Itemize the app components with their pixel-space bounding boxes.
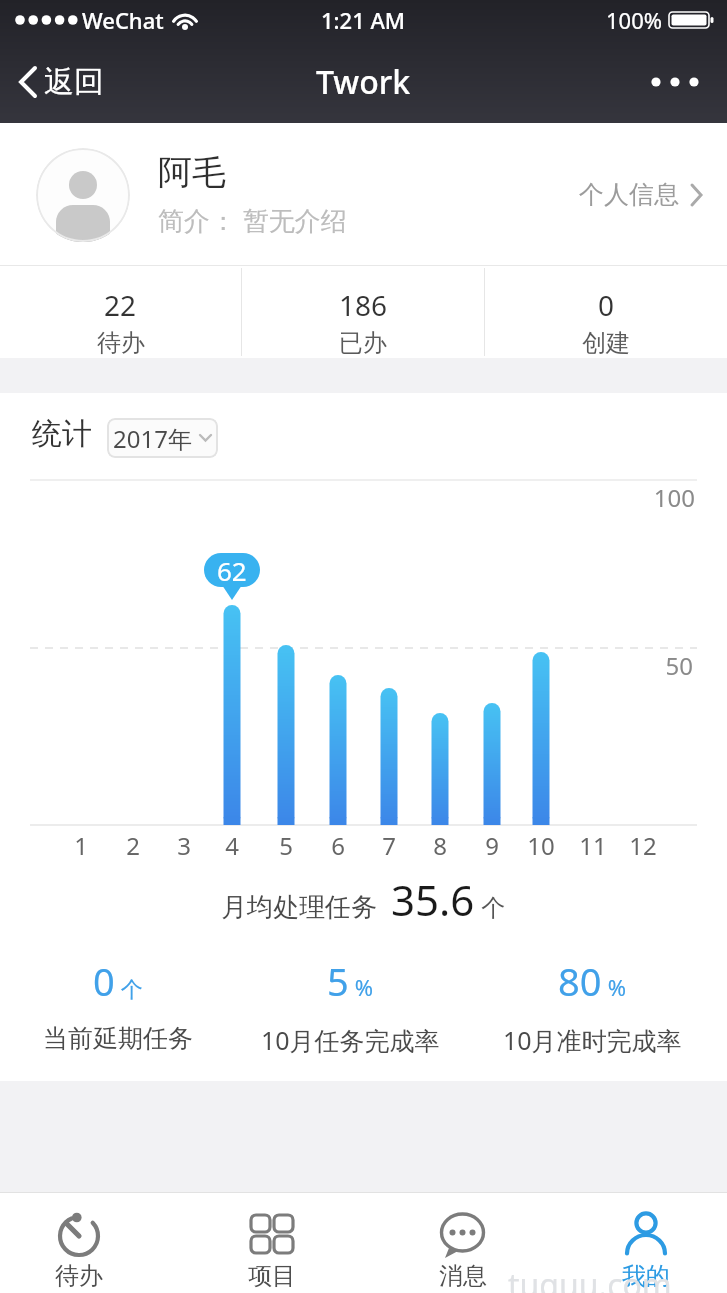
staticText: 简介： 暂无介绍 xyxy=(158,202,347,238)
staticText: 统计 xyxy=(32,415,92,453)
button[interactable]: 待办 xyxy=(0,1193,181,1293)
staticText: 100 xyxy=(565,481,695,514)
staticText: 0 xyxy=(598,286,615,324)
staticText: 阿毛 xyxy=(158,151,226,194)
staticText: 消息 xyxy=(439,1261,487,1291)
button[interactable] xyxy=(651,76,701,88)
staticText: 62 xyxy=(217,553,247,587)
button[interactable]: 2017年 xyxy=(107,418,218,458)
staticText: 3 xyxy=(158,829,210,862)
staticText: Twork xyxy=(316,60,411,104)
staticText: 创建 xyxy=(582,328,630,358)
staticText: 10月任务完成率 xyxy=(261,1023,440,1057)
staticText: 10月准时完成率 xyxy=(503,1023,682,1057)
staticText: 12 xyxy=(617,829,669,862)
staticText: 35.6 xyxy=(391,871,475,928)
staticText: 100% xyxy=(606,5,663,35)
staticText: 1:21 AM xyxy=(321,5,406,35)
button[interactable]: 我的 xyxy=(545,1193,727,1293)
staticText: 80 xyxy=(558,955,602,1007)
staticText: 当前延期任务 xyxy=(43,1023,193,1054)
staticText: WeChat xyxy=(82,5,164,35)
staticText: 项目 xyxy=(248,1261,296,1291)
staticText: 6 xyxy=(312,829,364,862)
staticText: 10 xyxy=(515,829,567,862)
staticText: 9 xyxy=(466,829,518,862)
staticText: 2 xyxy=(107,829,159,862)
staticText: 22 xyxy=(104,286,137,324)
staticText: 7 xyxy=(363,829,415,862)
button[interactable]: 消息 xyxy=(363,1193,545,1293)
staticText: 已办 xyxy=(339,328,387,358)
staticText: 我的 xyxy=(622,1261,670,1291)
button[interactable]: 22 xyxy=(0,266,241,358)
staticText: 返回 xyxy=(44,63,104,101)
staticText: 个人信息 xyxy=(579,179,679,210)
staticText: 50 xyxy=(563,649,693,682)
staticText: 个 xyxy=(115,973,143,1003)
staticText: 个 xyxy=(475,890,506,923)
staticText: 1 xyxy=(55,829,107,862)
staticText: 2017年 xyxy=(113,422,192,455)
button[interactable]: 阿毛 xyxy=(0,123,727,266)
staticText: 4 xyxy=(206,829,258,862)
staticText: 5 xyxy=(260,829,312,862)
staticText: 月均处理任务 xyxy=(221,888,391,924)
staticText: 待办 xyxy=(97,328,145,358)
staticText: 5 xyxy=(327,955,349,1007)
staticText: % xyxy=(349,972,374,1002)
staticText: 8 xyxy=(414,829,466,862)
staticText: 待办 xyxy=(55,1261,103,1291)
button[interactable]: 返回 xyxy=(16,63,104,101)
button[interactable]: 项目 xyxy=(181,1193,363,1293)
staticText: 186 xyxy=(339,286,388,324)
button[interactable]: 186 xyxy=(242,266,484,358)
button[interactable]: 0 xyxy=(485,266,727,358)
staticText: 0 xyxy=(93,955,115,1007)
staticText: 11 xyxy=(567,829,619,862)
staticText: % xyxy=(602,972,627,1002)
staticText: tuquu.com xyxy=(508,1263,672,1293)
